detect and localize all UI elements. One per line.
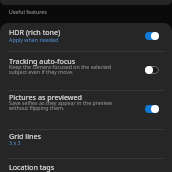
button[interactable]: Pictures as previewed xyxy=(0,91,172,129)
staticText: Save selfies as they appear in the previ… xyxy=(9,99,112,112)
staticText: Location tags xyxy=(9,162,55,172)
button[interactable]: Pictures as previewed xyxy=(141,101,163,117)
staticText: 3 x 3 xyxy=(9,139,21,146)
staticText: Pictures as previewed xyxy=(9,92,82,102)
staticText: Useful features xyxy=(9,8,47,15)
button[interactable]: Tracking auto-focus xyxy=(0,52,172,90)
staticText: Tracking auto-focus xyxy=(9,56,76,66)
staticText: Grid lines xyxy=(9,131,41,141)
button[interactable]: HDR (rich tone) xyxy=(141,28,163,44)
staticText: HDR (rich tone) xyxy=(9,27,61,37)
staticText: Keep the camera focused on the selected … xyxy=(9,63,112,76)
staticText: Apply when needed xyxy=(9,36,59,43)
button[interactable]: Grid lines xyxy=(0,130,172,158)
button[interactable]: HDR (rich tone) xyxy=(0,23,172,51)
button[interactable]: Tracking auto-focus xyxy=(141,62,163,78)
button[interactable]: Location tags xyxy=(0,159,172,172)
